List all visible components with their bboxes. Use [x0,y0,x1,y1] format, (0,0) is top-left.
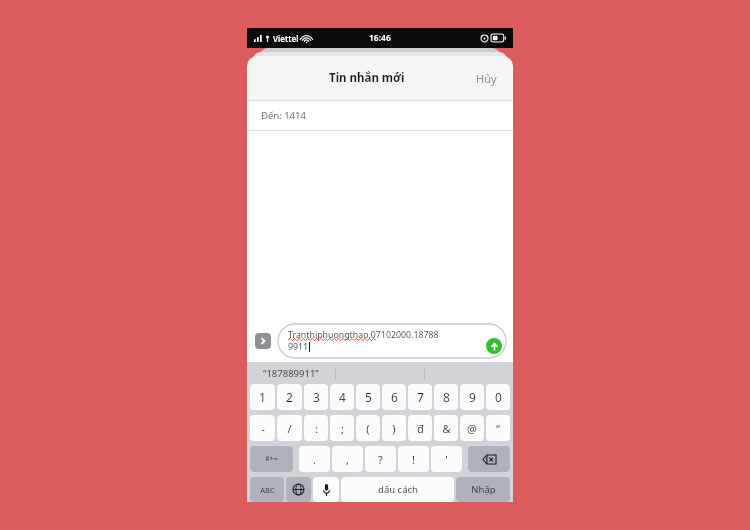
staticText: Viettel [273,33,299,44]
button[interactable]: Đến: 1414 [247,101,513,130]
staticText: Đến: 1414 [261,109,306,122]
staticText: Nhập [471,483,496,496]
staticText: ' [445,452,448,467]
staticText: 16:46 [369,32,391,44]
button[interactable]: ABC [250,477,284,502]
button[interactable]: ( [356,415,380,441]
staticText: Tranthiphuongthao.07102000.18788 [288,329,439,341]
staticText: / [287,421,292,436]
staticText: 9 [469,389,476,405]
staticText: 9911 [288,341,309,353]
button[interactable]: 5 [356,384,380,410]
staticText: . [313,452,316,467]
staticText: , [346,452,349,467]
staticText: ; [341,421,344,436]
button[interactable]: đ [408,415,432,441]
staticText: “187889911” [263,367,319,380]
button[interactable]: 4 [330,384,354,410]
button[interactable]: , [332,446,363,472]
button[interactable]: 0 [486,384,510,410]
staticText: “ [496,421,500,436]
staticText: dấu cách [378,483,418,496]
staticText: #+= [265,454,278,464]
button[interactable]: . [299,446,330,472]
button[interactable]: & [434,415,458,441]
staticText: 8 [443,389,450,405]
staticText: 4 [339,389,346,405]
button[interactable]: ! [398,446,429,472]
staticText: 2 [286,389,293,405]
button[interactable]: ; [330,415,354,441]
staticText: ( [366,421,370,436]
button[interactable]: ) [382,415,406,441]
button[interactable]: 7 [408,384,432,410]
button[interactable]: “187889911” [247,362,335,384]
staticText: 5 [365,389,372,405]
button[interactable]: 1 [250,384,275,410]
button[interactable]: ' [431,446,462,472]
staticText: 6 [391,389,398,405]
button[interactable]: 2 [277,384,302,410]
button[interactable]: App drawer [255,333,271,349]
staticText: - [261,421,265,436]
staticText: 0 [495,389,502,405]
button[interactable]: dấu cách [341,477,454,502]
button[interactable]: Send [486,338,502,354]
staticText: ABC [260,485,275,495]
button[interactable]: 6 [382,384,406,410]
button[interactable]: #+= [250,446,293,472]
button[interactable]: Tranthiphuongthao.07102000.18788 [278,324,506,358]
staticText: ! [412,452,415,467]
button[interactable]: @ [460,415,484,441]
button[interactable]: ? [365,446,396,472]
staticText: đ [417,421,424,436]
staticText: Hủy [476,71,497,86]
button[interactable]: Nhập [456,477,510,502]
staticText: & [442,421,451,436]
button[interactable]: 3 [304,384,328,410]
button[interactable]: Backspace [468,446,510,472]
staticText: @ [467,421,477,436]
button[interactable]: 9 [460,384,484,410]
staticText: : [315,421,318,436]
button[interactable]: 8 [434,384,458,410]
staticText: 3 [313,389,320,405]
button[interactable]: Dictation [313,477,339,502]
staticText: Tin nhắn mới [329,70,405,86]
staticText: ) [392,421,396,436]
button[interactable]: Next keyboard [286,477,311,502]
button[interactable]: / [277,415,302,441]
button[interactable]: : [304,415,328,441]
button[interactable]: “ [486,415,510,441]
button[interactable]: Hủy [473,64,500,93]
staticText: 1 [259,389,266,405]
button[interactable]: - [250,415,275,441]
staticText: 7 [417,389,424,405]
staticText: ? [378,452,383,467]
